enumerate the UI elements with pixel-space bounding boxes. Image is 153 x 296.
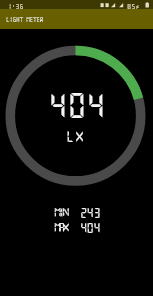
staticText: 404 bbox=[48, 89, 106, 121]
staticText: 243 bbox=[80, 207, 100, 219]
button[interactable]: LIGHT METER bbox=[0, 0, 153, 29]
staticText: 404 bbox=[80, 222, 100, 234]
staticText: MAX bbox=[54, 221, 67, 233]
staticText: 1:36 bbox=[7, 3, 24, 10]
staticText: 85% bbox=[127, 3, 140, 10]
staticText: LX bbox=[66, 129, 85, 143]
other: Light level gauge bbox=[0, 0, 153, 296]
staticText: LIGHT METER bbox=[6, 16, 44, 22]
staticText: MIN bbox=[54, 206, 67, 218]
